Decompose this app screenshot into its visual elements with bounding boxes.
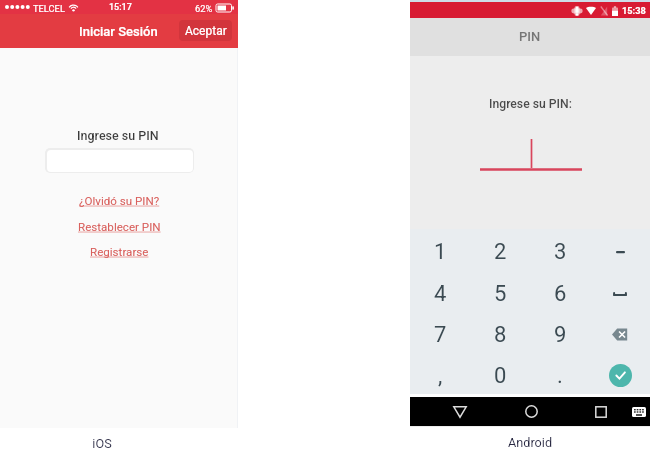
staticText: .	[557, 363, 563, 389]
button[interactable]: Registrarse	[90, 245, 149, 259]
staticText: Ingrese su PIN:	[489, 97, 572, 111]
button[interactable]: Aceptar	[179, 20, 232, 41]
staticText: Ingrese su PIN	[77, 128, 159, 143]
other: Minus	[616, 250, 625, 254]
button[interactable]: Minus	[590, 231, 650, 273]
staticText: Android	[410, 435, 650, 450]
staticText: Aceptar	[185, 24, 227, 38]
staticText: 5	[494, 281, 507, 307]
button[interactable]: 3	[530, 231, 590, 273]
staticText: 1	[434, 239, 447, 265]
button[interactable]: Backspace	[590, 314, 650, 355]
button[interactable]: 0	[470, 355, 530, 396]
button[interactable]	[45, 148, 194, 173]
button[interactable]: 4	[410, 273, 470, 314]
staticText: Iniciar Sesión	[79, 24, 158, 39]
button[interactable]: 2	[470, 231, 530, 273]
button[interactable]: 7	[410, 314, 470, 355]
staticText: ¿Olvidó su PIN?	[79, 194, 160, 208]
staticText: 7	[434, 322, 447, 348]
staticText: ,	[438, 363, 443, 389]
button[interactable]: Accept	[590, 355, 650, 396]
staticText: 15:17	[109, 2, 132, 13]
button[interactable]: Accept	[609, 364, 632, 387]
staticText: Registrarse	[90, 245, 149, 259]
staticText: 62%	[195, 3, 213, 14]
staticText: TELCEL	[33, 3, 65, 14]
staticText: 15:38	[622, 5, 646, 16]
staticText: PIN	[519, 29, 541, 44]
button[interactable]: ,	[410, 355, 470, 396]
staticText: Restablecer PIN	[78, 220, 161, 234]
button[interactable]: Space	[590, 273, 650, 314]
staticText: 3	[554, 239, 567, 265]
staticText: iOS	[0, 436, 204, 450]
other: Space	[613, 291, 627, 296]
button[interactable]: 6	[530, 273, 590, 314]
staticText: 2	[494, 239, 507, 265]
staticText: 0	[494, 363, 507, 389]
button[interactable]: 9	[530, 314, 590, 355]
other: Backspace	[612, 328, 628, 341]
staticText: 8	[494, 322, 507, 348]
button[interactable]: Recent apps	[585, 397, 617, 426]
button[interactable]: .	[530, 355, 590, 396]
button[interactable]: Switch keyboard	[627, 397, 650, 426]
button[interactable]: Home	[515, 397, 547, 426]
button[interactable]: 1	[410, 231, 470, 273]
staticText: 4	[434, 281, 447, 307]
staticText: 6	[554, 281, 567, 307]
button[interactable]: ¿Olvidó su PIN?	[79, 194, 160, 208]
button[interactable]: 8	[470, 314, 530, 355]
button[interactable]: Restablecer PIN	[78, 220, 161, 234]
staticText: 9	[554, 322, 567, 348]
button[interactable]: 5	[470, 273, 530, 314]
button[interactable]: Back	[444, 397, 476, 426]
